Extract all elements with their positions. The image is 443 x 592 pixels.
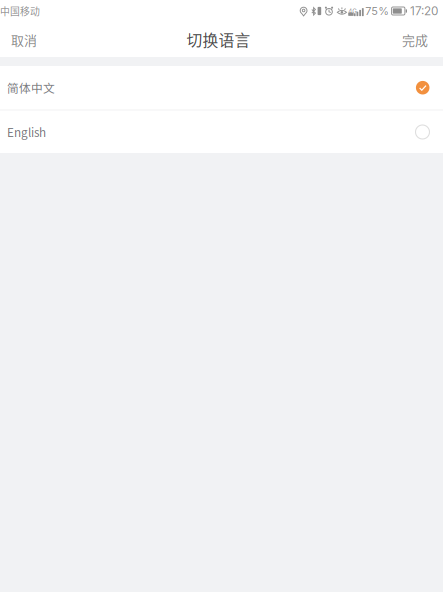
button[interactable]: 取消 (0, 22, 48, 57)
button[interactable]: 完成 (387, 22, 443, 57)
staticText: 切换语言 (186, 28, 250, 51)
staticText: 取消 (11, 30, 37, 49)
staticText: 75% (365, 4, 389, 18)
staticText: 17:20 (410, 4, 438, 18)
staticText: 中国移动 (0, 4, 40, 18)
staticText: 4G (348, 7, 357, 15)
staticText: 完成 (402, 30, 428, 49)
staticText: 简体中文 (7, 79, 55, 96)
button[interactable]: English (0, 111, 443, 153)
button[interactable]: 简体中文 (0, 66, 443, 109)
staticText: English (7, 123, 46, 140)
